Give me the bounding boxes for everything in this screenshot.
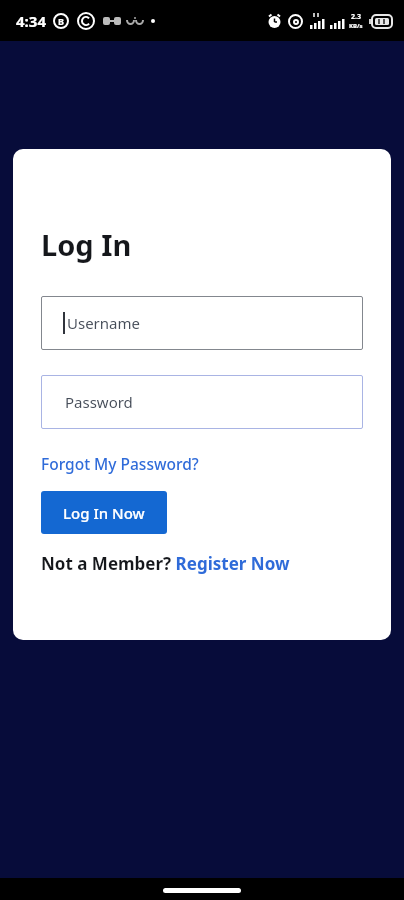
button[interactable]: Not a Member? Register Now: [41, 552, 290, 575]
staticText: Password: [65, 392, 133, 412]
button[interactable]: Username: [41, 296, 363, 350]
button[interactable]: Forgot My Password?: [41, 453, 199, 474]
staticText: KB/s: [349, 22, 363, 30]
staticText: 4:34: [16, 11, 46, 31]
button[interactable]: Password: [41, 375, 363, 429]
staticText: Log In: [41, 225, 132, 264]
staticText: B: [58, 15, 64, 27]
staticText: Username: [67, 313, 140, 333]
button[interactable]: Log In Now: [41, 491, 167, 534]
staticText: Not a Member? Register Now: [41, 552, 290, 575]
staticText: Log In Now: [63, 503, 145, 523]
staticText: 2.3: [351, 12, 361, 22]
